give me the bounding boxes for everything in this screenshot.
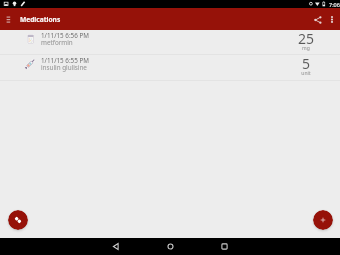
staticText: insulin glulisine [41, 63, 87, 72]
staticText: 7:06 [329, 1, 340, 8]
button[interactable]: Add [313, 210, 333, 230]
button[interactable]: Back [104, 238, 128, 255]
staticText: unit [288, 70, 324, 77]
button[interactable]: Home [158, 238, 182, 255]
staticText: 1/11/15 6:55 PM [41, 56, 89, 65]
button[interactable]: Add medication dose [8, 210, 28, 230]
button[interactable]: Share [310, 9, 325, 30]
button[interactable]: Recent apps [212, 238, 236, 255]
staticText: mg [288, 45, 324, 52]
staticText: 5 [288, 54, 324, 73]
button[interactable]: 1/11/15 6:55 PM [0, 55, 340, 81]
staticText: metformin [41, 38, 73, 47]
staticText: 1/11/15 6:56 PM [41, 31, 89, 40]
button[interactable]: Navigation menu [1, 10, 16, 27]
staticText: 25 [288, 29, 324, 48]
button[interactable]: 1/11/15 6:56 PM [0, 30, 340, 55]
staticText: Medications [20, 15, 61, 24]
button[interactable]: More options [326, 9, 338, 30]
